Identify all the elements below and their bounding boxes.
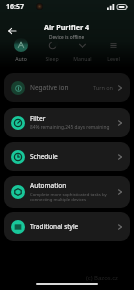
button[interactable]: Filter [4, 108, 130, 137]
staticText: Level [107, 55, 120, 62]
button[interactable]: Sleep [37, 38, 67, 62]
staticText: Schedule [30, 152, 58, 161]
staticText: Manual [73, 55, 92, 62]
staticText: Negative ion [30, 83, 69, 92]
staticText: Turn on [93, 84, 114, 91]
button[interactable]: Negative ion [4, 73, 130, 102]
staticText: Auto [15, 55, 27, 62]
button[interactable]: Manual [67, 38, 97, 62]
staticText: 84% remaining,245 days remaining [30, 124, 110, 131]
staticText: (c) Bazos.cz [86, 274, 118, 282]
staticText: Traditional style [30, 222, 79, 231]
staticText: Air Purifier 4 [44, 22, 90, 32]
staticText: Complete more sophisticated tasks by con… [30, 191, 107, 203]
staticText: Sleep [45, 55, 59, 62]
button[interactable]: Automation [4, 176, 130, 208]
button[interactable]: Schedule [4, 142, 130, 171]
button[interactable]: Back [2, 21, 22, 41]
button[interactable]: Traditional style [4, 212, 130, 241]
staticText: Device is offline [49, 34, 85, 41]
staticText: 16:57 [6, 2, 24, 12]
button[interactable]: Auto [6, 38, 36, 62]
staticText: Filter [30, 114, 46, 123]
button[interactable]: Level [98, 38, 128, 62]
staticText: Automation [30, 181, 67, 190]
